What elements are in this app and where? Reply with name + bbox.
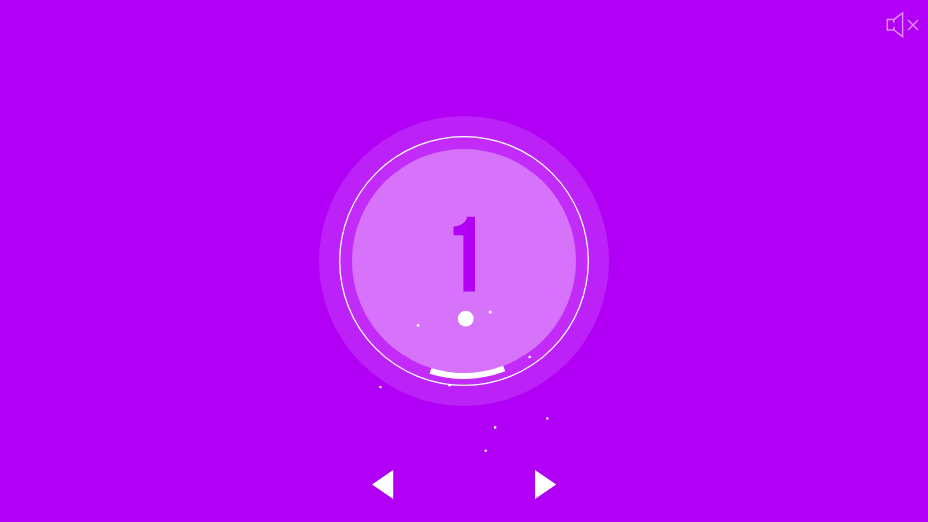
button[interactable]: Unmute sound	[880, 4, 924, 46]
button[interactable]: Round 1 timer	[319, 116, 609, 406]
button[interactable]: Previous round	[358, 456, 412, 512]
button[interactable]: Play	[521, 456, 575, 512]
